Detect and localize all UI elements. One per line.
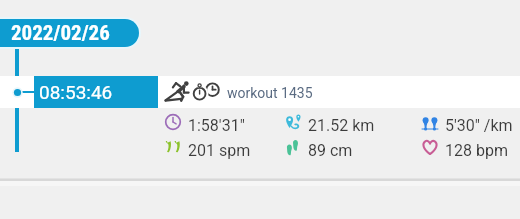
button[interactable]: Running workout	[162, 76, 224, 108]
staticText: 21.52 km	[308, 116, 375, 135]
button[interactable]: 201 spm	[164, 138, 274, 164]
button[interactable]: 5'30" /km	[421, 113, 520, 139]
staticText: 1:58'31"	[188, 116, 245, 135]
staticText: 201 spm	[188, 141, 251, 160]
button[interactable]: 08:53:46	[34, 76, 158, 108]
staticText: 08:53:46	[39, 81, 113, 103]
button[interactable]: 2022/02/26	[0, 19, 139, 47]
button[interactable]: workout 1435	[227, 85, 313, 101]
button[interactable]: 89 cm	[284, 138, 394, 164]
staticText: 89 cm	[308, 141, 353, 160]
staticText: 5'30" /km	[445, 116, 513, 135]
button[interactable]: 128 bpm	[421, 138, 520, 164]
staticText: 2022/02/26	[11, 21, 110, 46]
button[interactable]: 1:58'31"	[164, 113, 274, 139]
button[interactable]: 21.52 km	[284, 113, 394, 139]
staticText: 128 bpm	[445, 141, 508, 160]
